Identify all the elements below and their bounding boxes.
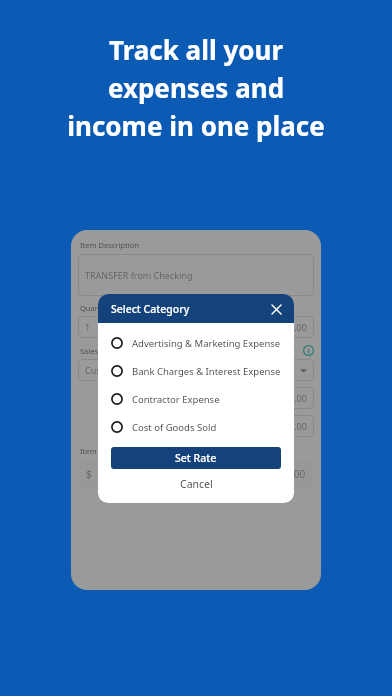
staticText: Contractor Expense [132,393,220,406]
button[interactable]: Bank Charges & Interest Expense [98,357,294,385]
staticText: TRANSFER from Checking [85,269,193,281]
button[interactable]: Contractor Expense [98,385,294,413]
staticText: 112.00 [274,467,306,481]
button[interactable]: Advertising & Marketing Expense [98,329,294,357]
button[interactable]: Cost of Goods Sold [98,413,294,441]
staticText: Quantity [80,303,111,313]
button[interactable]: Set Rate [111,447,281,469]
staticText: Select Category [111,302,190,316]
staticText: Cancel [180,477,213,491]
button[interactable]: Close [267,300,285,318]
button[interactable]: Cancel [98,469,294,499]
staticText: Cost of Goods Sold [132,421,217,434]
staticText: 0.00 [289,420,307,432]
staticText: Bank Charges & Interest Expense [132,365,281,378]
staticText: Track all your expenses and income in on… [18,32,374,143]
staticText: Item Description [80,240,139,250]
staticText: Advertising & Marketing Expense [132,337,281,350]
staticText: Sales Tax [80,346,112,356]
staticText: 0.00 [289,392,307,404]
staticText: Item Total [80,446,116,456]
staticText: $ [86,467,92,481]
staticText: Set Rate [175,451,217,465]
staticText: Custom [85,364,118,376]
staticText: 1 [85,321,91,333]
staticText: 0.00 [289,321,307,333]
